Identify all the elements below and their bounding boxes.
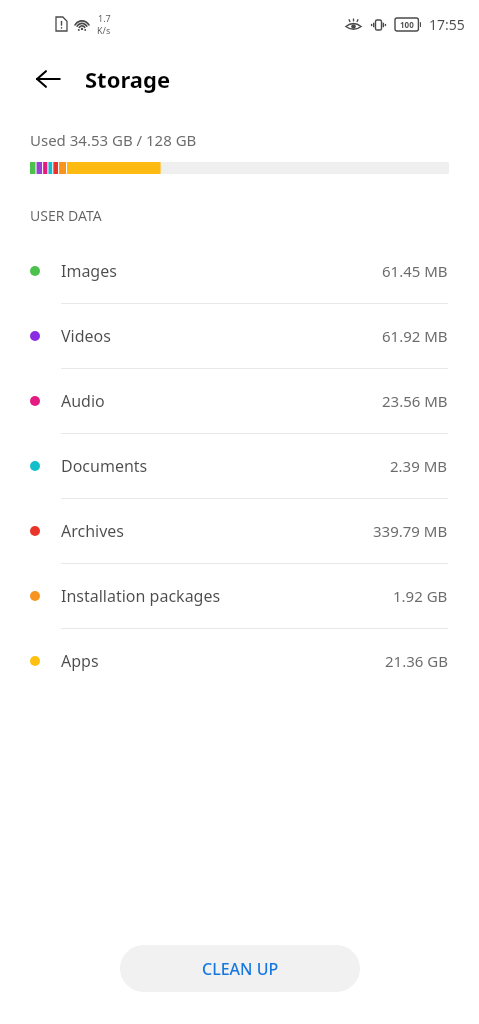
staticText: 1.92 GB — [393, 586, 448, 606]
staticText: 23.56 MB — [382, 391, 448, 411]
button[interactable]: Installation packages — [0, 564, 479, 628]
staticText: 61.45 MB — [382, 261, 448, 281]
button[interactable]: Archives — [0, 499, 479, 563]
button[interactable]: Documents — [0, 434, 479, 498]
staticText: Images — [61, 260, 117, 282]
button[interactable]: Back — [22, 53, 74, 105]
staticText: Used 34.53 GB / 128 GB — [30, 130, 197, 150]
staticText: K/s — [97, 24, 111, 36]
staticText: 1.7 — [98, 12, 111, 24]
staticText: Installation packages — [61, 585, 221, 607]
staticText: 2.39 MB — [390, 456, 448, 476]
staticText: 21.36 GB — [385, 651, 448, 671]
staticText: Storage — [85, 64, 171, 94]
staticText: 17:55 — [429, 15, 465, 34]
staticText: Apps — [61, 650, 99, 672]
staticText: 61.92 MB — [382, 326, 448, 346]
staticText: Videos — [61, 325, 111, 347]
staticText: Audio — [61, 390, 105, 412]
button[interactable]: CLEAN UP — [120, 945, 360, 992]
staticText: USER DATA — [30, 206, 102, 225]
button[interactable]: Audio — [0, 369, 479, 433]
button[interactable]: Apps — [0, 629, 479, 693]
staticText: 100 — [400, 19, 414, 30]
button[interactable]: Images — [0, 239, 479, 303]
staticText: Documents — [61, 455, 148, 477]
staticText: CLEAN UP — [202, 958, 279, 980]
staticText: 339.79 MB — [373, 521, 448, 541]
button[interactable]: Videos — [0, 304, 479, 368]
staticText: Archives — [61, 520, 125, 542]
